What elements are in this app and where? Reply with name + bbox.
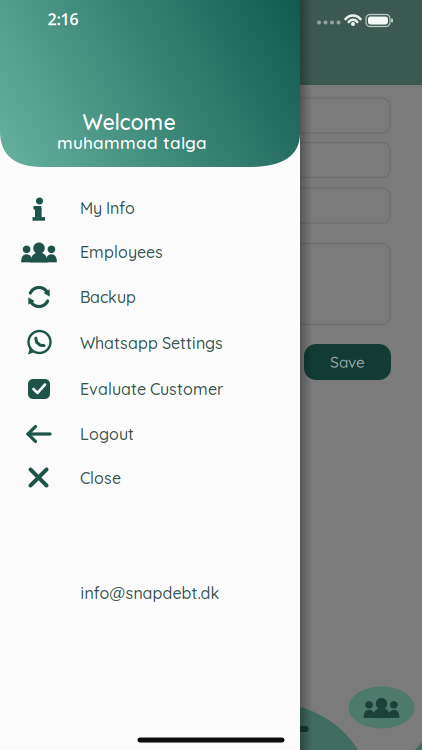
staticText: My Info [80,198,135,218]
staticText: 2:16 [47,8,78,30]
staticText: Save [330,352,365,372]
button[interactable]: Employees [0,230,300,274]
staticText: info@snapdebt.dk [80,583,219,603]
staticText: Backup [80,287,136,307]
button[interactable]: info@snapdebt.dk [80,583,219,603]
staticText: Welcome [82,109,175,135]
button[interactable]: Whatsapp Settings [0,321,300,365]
button[interactable]: Backup [0,275,300,319]
button[interactable]: Employees [348,686,414,728]
button[interactable]: Evaluate Customer [0,367,300,411]
staticText: Employees [80,242,163,262]
button[interactable]: Logout [0,412,300,456]
button[interactable]: Save [304,344,391,380]
staticText: Logout [80,424,134,444]
button[interactable]: My Info [0,186,300,230]
staticText: Evaluate Customer [80,379,223,399]
staticText: Whatsapp Settings [80,333,223,353]
staticText: Close [80,468,121,488]
button[interactable]: Close [0,456,300,500]
staticText: muhammad talga [57,132,207,153]
